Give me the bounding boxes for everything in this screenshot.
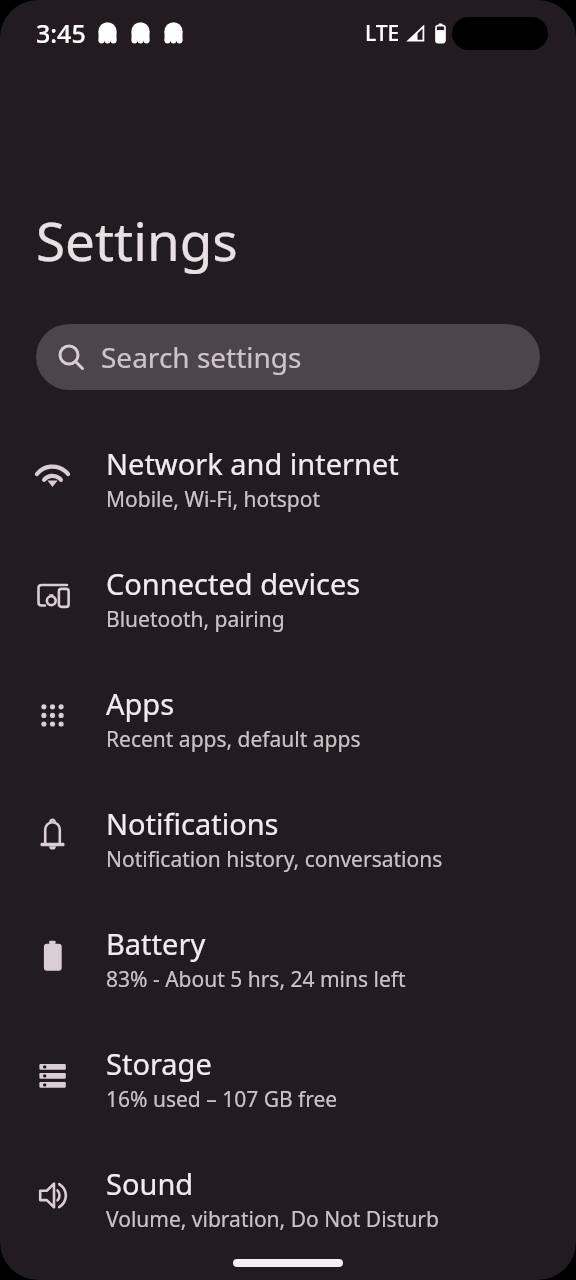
button[interactable]: Notifications xyxy=(0,779,576,899)
staticText: 16% used – 107 GB free xyxy=(106,1085,338,1114)
staticText: Connected devices xyxy=(106,564,361,603)
staticText: Bluetooth, pairing xyxy=(106,605,285,634)
staticText: 83% - About 5 hrs, 24 mins left xyxy=(106,965,406,994)
staticText: 3:45 xyxy=(36,16,86,50)
staticText: Apps xyxy=(106,684,175,723)
staticText: LTE xyxy=(365,19,400,48)
button[interactable]: Search settings xyxy=(36,324,540,390)
staticText: Network and internet xyxy=(106,444,399,483)
button[interactable]: Battery xyxy=(0,899,576,1019)
staticText: Notification history, conversations xyxy=(106,845,443,874)
button[interactable]: Storage xyxy=(0,1019,576,1139)
button[interactable]: Apps xyxy=(0,659,576,779)
button[interactable]: Connected devices xyxy=(0,539,576,659)
button[interactable]: Network and internet xyxy=(0,419,576,539)
button[interactable]: Sound xyxy=(0,1139,576,1259)
staticText: Volume, vibration, Do Not Disturb xyxy=(106,1205,439,1234)
staticText: Sound xyxy=(106,1164,194,1203)
staticText: Storage xyxy=(106,1044,212,1083)
staticText: Mobile, Wi-Fi, hotspot xyxy=(106,485,321,514)
staticText: Battery xyxy=(106,924,206,963)
staticText: Search settings xyxy=(101,338,302,376)
staticText: Notifications xyxy=(106,804,279,843)
staticText: Settings xyxy=(36,204,238,276)
staticText: Recent apps, default apps xyxy=(106,725,361,754)
